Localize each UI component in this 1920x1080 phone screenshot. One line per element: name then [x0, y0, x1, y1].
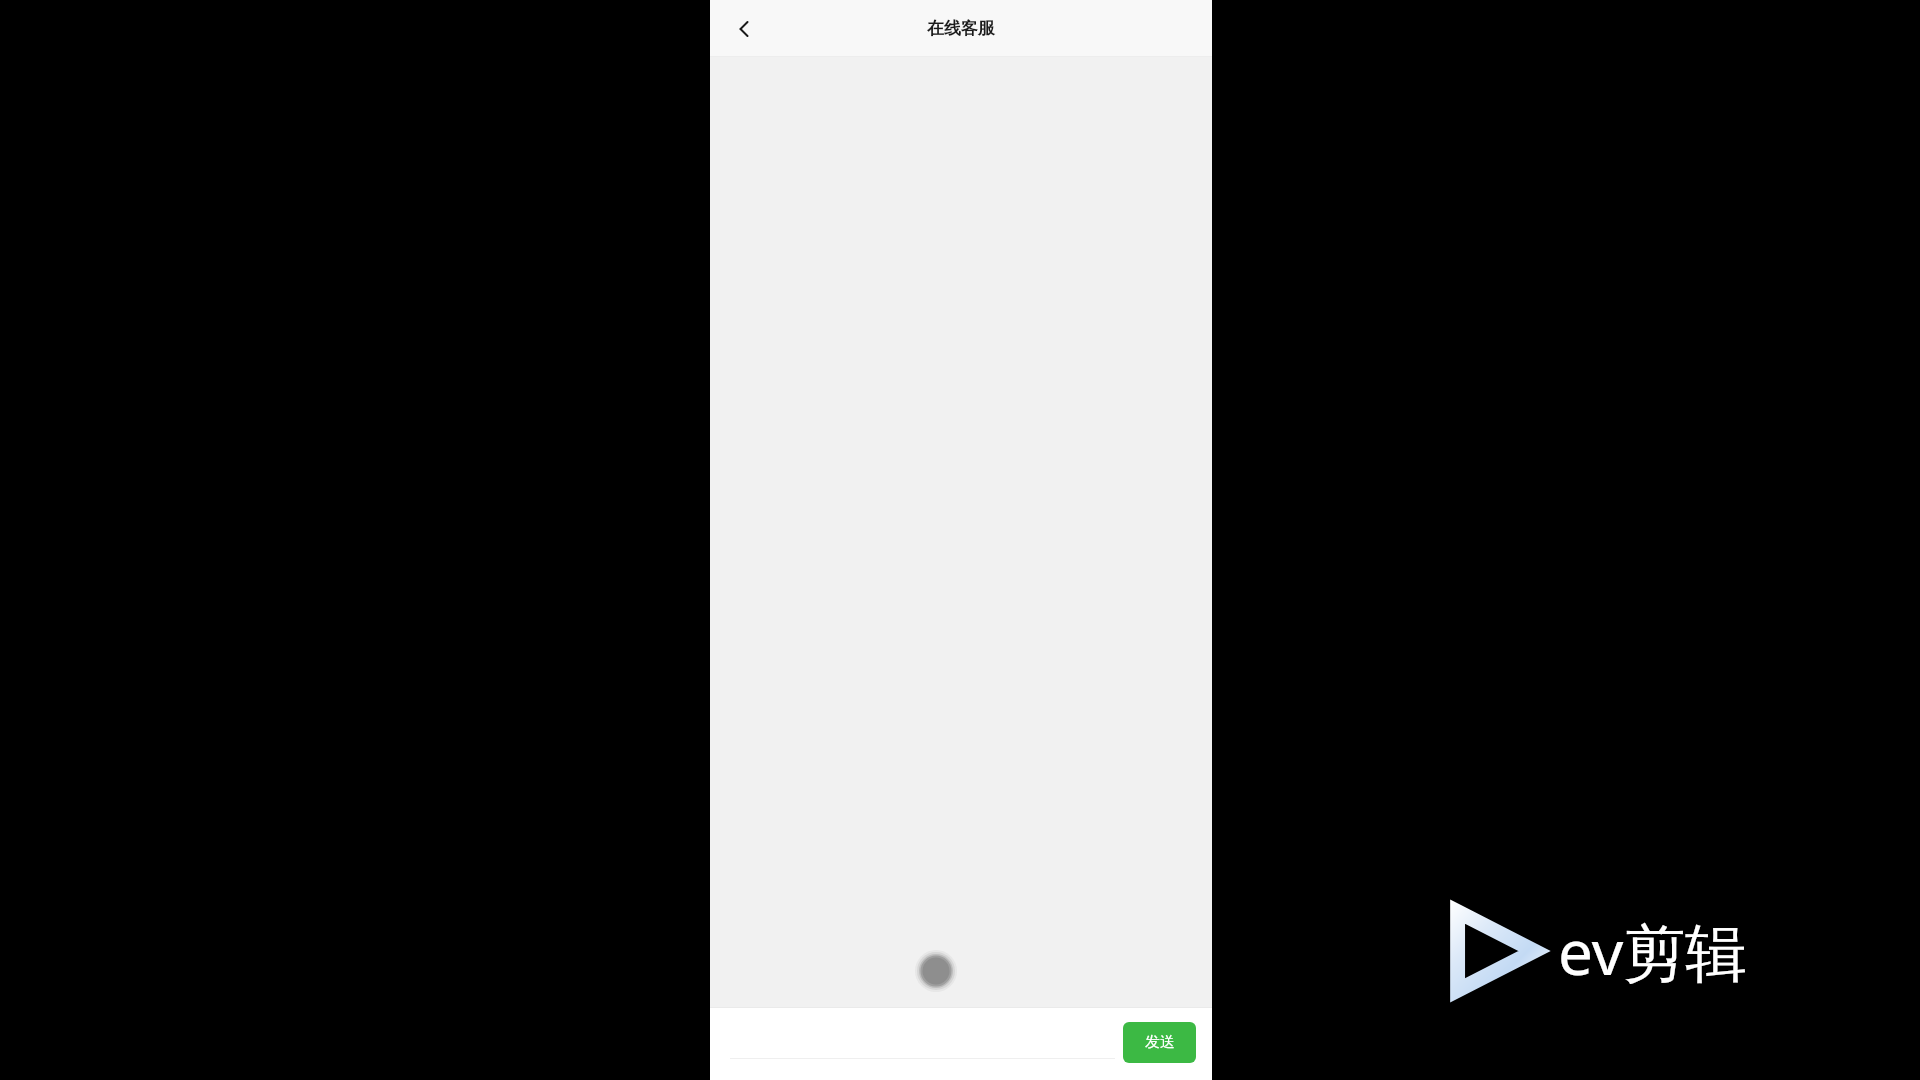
button[interactable]: 发送	[1123, 1022, 1196, 1063]
button[interactable]: Back	[722, 7, 766, 51]
staticText: 发送	[1145, 1033, 1175, 1052]
staticText: ev剪辑	[1558, 909, 1748, 994]
staticText: 在线客服	[927, 18, 995, 39]
